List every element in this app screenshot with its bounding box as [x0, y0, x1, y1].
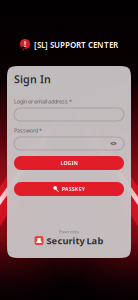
- staticText: Login or email address *: [14, 98, 72, 105]
- staticText: Powered by: [59, 229, 79, 234]
- staticText: Security Lab: [46, 234, 103, 247]
- button[interactable]: PASSKEY: [14, 182, 124, 196]
- staticText: [SL] SUPPORT CENTER: [34, 40, 118, 50]
- staticText: PASSKEY: [62, 185, 85, 193]
- staticText: Sign In: [14, 72, 51, 86]
- staticText: LOGIN: [60, 159, 77, 167]
- staticText: Password *: [14, 127, 42, 134]
- button[interactable]: LOGIN: [14, 156, 124, 170]
